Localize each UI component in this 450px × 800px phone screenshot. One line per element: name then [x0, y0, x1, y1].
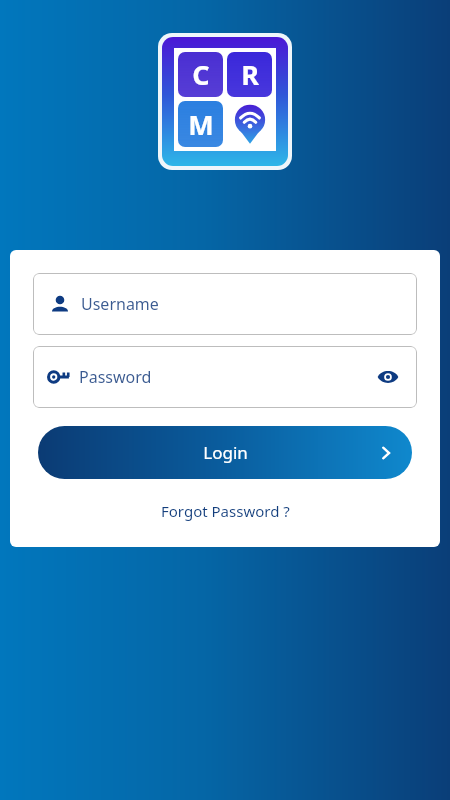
staticText: Login	[203, 441, 248, 464]
staticText: M	[188, 106, 214, 143]
button[interactable]: Username	[33, 273, 417, 335]
button[interactable]: Password	[33, 346, 417, 408]
staticText: Forgot Password ?	[161, 501, 290, 521]
staticText: Username	[81, 293, 159, 315]
staticText: Password	[79, 366, 152, 388]
button[interactable]: Forgot Password ?	[151, 497, 300, 525]
staticText: C	[192, 56, 210, 93]
button[interactable]: Show password	[374, 363, 402, 391]
button[interactable]: Login	[38, 426, 412, 479]
staticText: R	[241, 56, 259, 93]
